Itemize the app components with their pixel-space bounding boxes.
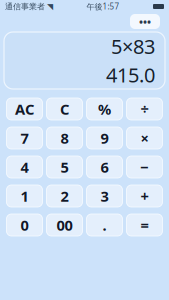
staticText: + [140, 186, 148, 206]
staticText: AC [15, 99, 34, 119]
staticText: ••• [139, 14, 151, 29]
button[interactable]: × [126, 127, 162, 149]
button[interactable]: 5 [46, 156, 82, 178]
button[interactable]: = [126, 214, 162, 236]
staticText: ◥ [47, 2, 53, 11]
staticText: 00 [56, 215, 72, 235]
button[interactable]: 8 [46, 127, 82, 149]
button[interactable]: ÷ [126, 98, 162, 120]
button[interactable]: C [46, 98, 82, 120]
staticText: 午後1:57 [86, 1, 119, 12]
staticText: 0 [20, 215, 28, 235]
staticText: 5×83 [111, 33, 155, 59]
button[interactable]: More options [130, 14, 160, 29]
staticText: ÷ [140, 99, 148, 119]
staticText: 7 [20, 128, 28, 148]
staticText: 415.0 [106, 61, 155, 88]
staticText: 6 [100, 157, 108, 177]
staticText: × [140, 128, 148, 148]
staticText: 通信事業者 [5, 2, 45, 11]
button[interactable]: 1 [6, 185, 42, 207]
button[interactable]: 7 [6, 127, 42, 149]
staticText: − [140, 157, 149, 177]
staticText: 2 [60, 186, 68, 206]
button[interactable]: 00 [46, 214, 82, 236]
button[interactable]: 6 [86, 156, 122, 178]
staticText: 3 [100, 186, 108, 206]
staticText: C [60, 99, 69, 119]
staticText: 9 [100, 128, 108, 148]
button[interactable]: % [86, 98, 122, 120]
button[interactable]: + [126, 185, 162, 207]
staticText: 5 [60, 157, 68, 177]
button[interactable]: 2 [46, 185, 82, 207]
staticText: 1 [20, 186, 28, 206]
button[interactable]: AC [6, 98, 42, 120]
button[interactable]: 0 [6, 214, 42, 236]
button[interactable]: 9 [86, 127, 122, 149]
button[interactable]: − [126, 156, 162, 178]
staticText: 8 [60, 128, 68, 148]
staticText: % [98, 99, 111, 119]
button[interactable]: . [86, 214, 122, 236]
button[interactable]: 3 [86, 185, 122, 207]
staticText: = [140, 215, 148, 235]
button[interactable]: 4 [6, 156, 42, 178]
staticText: 4 [20, 157, 28, 177]
staticText: . [102, 215, 106, 235]
